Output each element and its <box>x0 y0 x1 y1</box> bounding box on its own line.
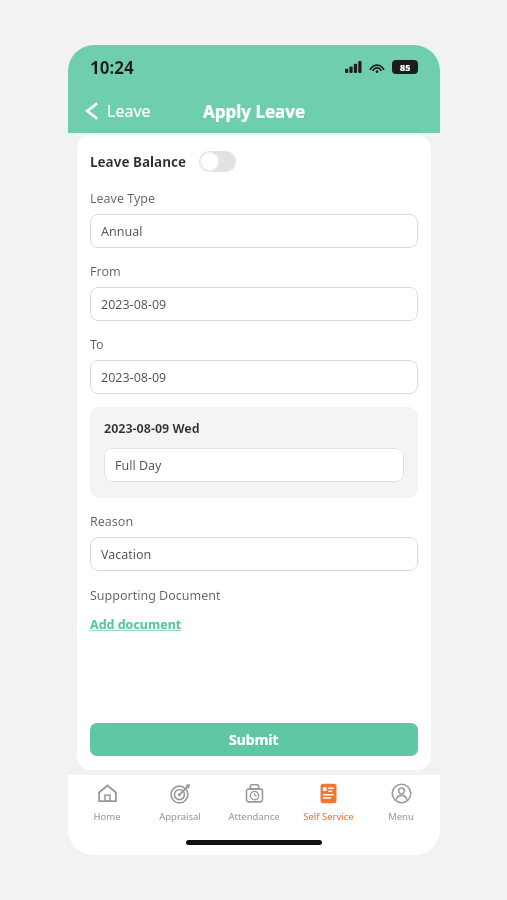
staticText: Home <box>93 810 121 823</box>
staticText: Annual <box>101 223 143 240</box>
button[interactable]: Leave balance toggle <box>199 151 236 172</box>
staticText: 10:24 <box>90 56 134 79</box>
staticText: Add document <box>90 616 182 633</box>
staticText: To <box>90 336 104 353</box>
staticText: 85 <box>400 61 411 73</box>
button[interactable]: Home <box>72 780 142 826</box>
button[interactable]: Menu <box>366 780 436 826</box>
staticText: Apply Leave <box>203 100 306 123</box>
staticText: Attendance <box>228 810 280 823</box>
staticText: Leave <box>107 100 151 122</box>
staticText: 2023-08-09 Wed <box>104 420 200 437</box>
staticText: Reason <box>90 513 134 530</box>
button[interactable]: 2023-08-09 <box>90 287 418 321</box>
button[interactable]: Appraisal <box>145 780 215 826</box>
button[interactable]: Leave <box>80 96 155 126</box>
staticText: Full Day <box>115 457 162 474</box>
staticText: Menu <box>388 810 414 823</box>
staticText: 2023-08-09 <box>101 296 167 313</box>
button[interactable]: Add document <box>90 614 182 635</box>
staticText: Supporting Document <box>90 587 221 604</box>
button[interactable]: Self Service <box>293 780 363 826</box>
button[interactable]: Full Day <box>104 448 404 482</box>
staticText: Submit <box>229 730 279 749</box>
staticText: Vacation <box>101 546 152 563</box>
button[interactable]: Vacation <box>90 537 418 571</box>
button[interactable]: 2023-08-09 <box>90 360 418 394</box>
button[interactable]: Attendance <box>219 780 289 826</box>
button[interactable]: Submit <box>90 723 418 756</box>
staticText: Self Service <box>303 810 354 823</box>
button[interactable]: Annual <box>90 214 418 248</box>
staticText: Appraisal <box>159 810 201 823</box>
staticText: From <box>90 263 121 280</box>
staticText: 2023-08-09 <box>101 369 167 386</box>
staticText: Leave Type <box>90 190 156 207</box>
staticText: Leave Balance <box>90 153 186 171</box>
